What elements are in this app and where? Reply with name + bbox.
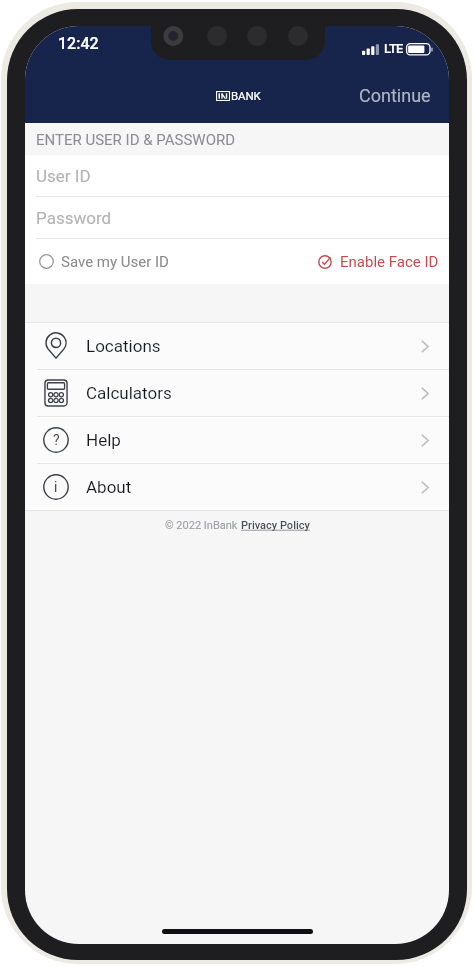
button[interactable]: Calculators [25,370,449,416]
staticText: 12:42 [58,34,99,53]
button[interactable]: Locations [25,323,449,369]
staticText: BANK [231,89,261,102]
staticText: About [86,477,132,497]
staticText: Calculators [86,383,172,403]
staticText: ? [53,432,60,448]
staticText: ENTER USER ID & PASSWORD [36,131,236,149]
button[interactable]: i [25,464,449,510]
staticText: Save my User ID [61,253,169,271]
staticText: User ID [36,166,91,186]
button[interactable]: Password [25,197,449,238]
staticText: Privacy Policy [241,519,310,532]
button[interactable]: User ID [25,155,449,196]
button[interactable]: Enable Face ID [312,239,449,284]
staticText: Locations [86,336,161,356]
staticText: LTE [384,41,403,56]
button[interactable]: Continue [341,77,449,114]
button[interactable]: ? [25,417,449,463]
button[interactable]: Save my User ID [25,239,175,284]
button[interactable]: Privacy Policy [241,519,310,532]
staticText: Continue [359,85,431,106]
staticText: Enable Face ID [340,253,439,271]
staticText: © 2022 InBank [165,519,241,532]
staticText: Help [86,430,121,450]
staticText: Password [36,208,112,228]
staticText: i [54,479,58,495]
